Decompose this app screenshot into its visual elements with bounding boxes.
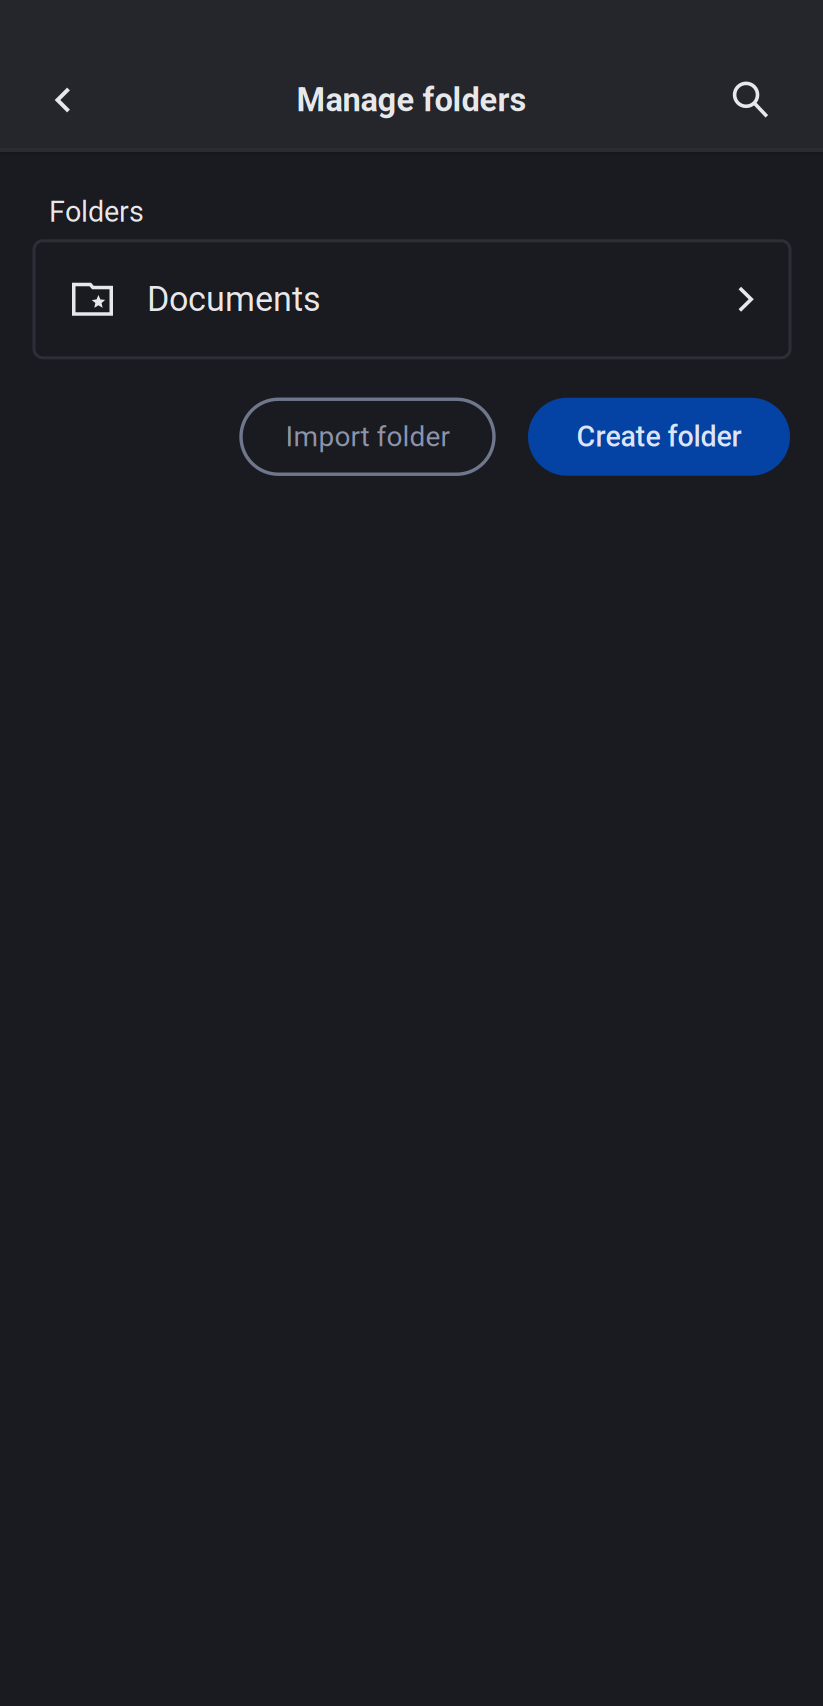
button[interactable]: Back (0, 52, 126, 148)
button[interactable]: Search (678, 52, 823, 148)
button[interactable]: Documents (34, 241, 790, 358)
staticText: Create folder (576, 420, 741, 454)
staticText: Folders (49, 195, 144, 229)
staticText: Manage folders (296, 81, 526, 119)
button[interactable]: Create folder (528, 398, 790, 476)
button[interactable]: Import folder (241, 399, 494, 474)
staticText: Documents (147, 279, 321, 319)
staticText: Import folder (285, 420, 449, 453)
